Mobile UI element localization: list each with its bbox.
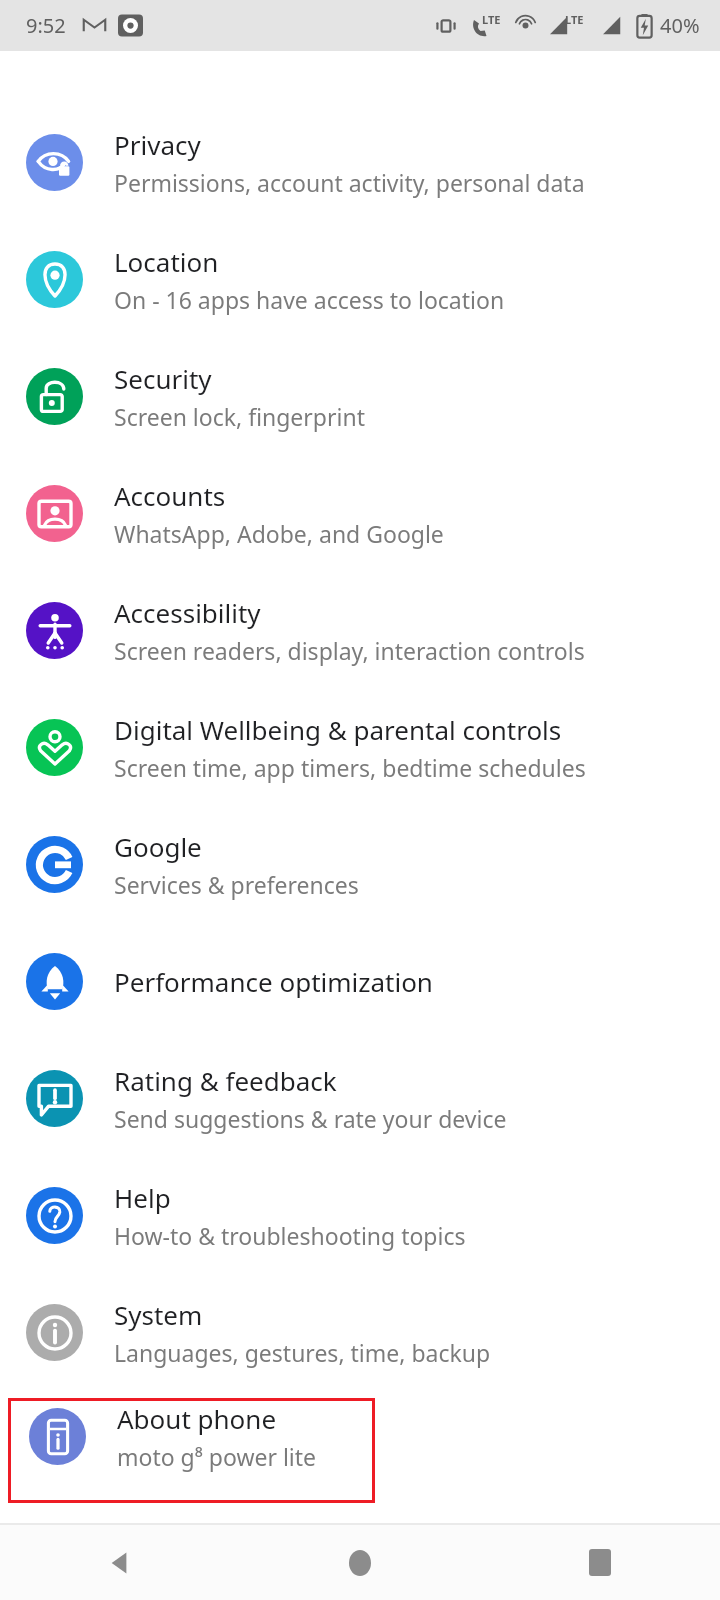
staticText: Google (114, 829, 202, 864)
staticText: moto g⁸ power lite (117, 1441, 317, 1472)
staticText: Security (114, 361, 212, 396)
staticText: LTE (482, 12, 501, 27)
staticText: Accounts (114, 478, 226, 513)
button[interactable]: Rating & feedback (0, 1040, 720, 1157)
staticText: On - 16 apps have access to location (114, 284, 505, 315)
button[interactable]: Security (0, 338, 720, 455)
button[interactable]: Location (0, 221, 720, 338)
button[interactable]: Google (0, 806, 720, 923)
staticText: 40% (660, 12, 700, 39)
button[interactable]: Back (82, 1525, 158, 1600)
staticText: Accessibility (114, 595, 261, 630)
button[interactable]: Privacy (0, 104, 720, 221)
staticText: Screen time, app timers, bedtime schedul… (114, 752, 586, 783)
button[interactable]: Performance optimization (0, 923, 720, 1040)
staticText: System (114, 1297, 203, 1332)
staticText: WhatsApp, Adobe, and Google (114, 518, 444, 549)
staticText: Screen readers, display, interaction con… (114, 635, 585, 666)
button[interactable]: System (0, 1274, 720, 1391)
staticText: Services & preferences (114, 869, 359, 900)
staticText: Permissions, account activity, personal … (114, 167, 585, 198)
button[interactable]: Help (0, 1157, 720, 1274)
button[interactable]: Accessibility (0, 572, 720, 689)
staticText: Help (114, 1180, 171, 1215)
button[interactable]: Recent apps (562, 1525, 638, 1600)
staticText: Privacy (114, 127, 201, 162)
staticText: Send suggestions & rate your device (114, 1103, 507, 1134)
staticText: 9:52 (26, 12, 66, 39)
staticText: Rating & feedback (114, 1063, 337, 1098)
staticText: Location (114, 244, 219, 279)
staticText: Languages, gestures, time, backup (114, 1337, 491, 1368)
button[interactable]: About phone (3, 1401, 364, 1472)
button[interactable]: Accounts (0, 455, 720, 572)
staticText: About phone (117, 1401, 277, 1436)
staticText: Digital Wellbeing & parental controls (114, 712, 562, 747)
staticText: How-to & troubleshooting topics (114, 1220, 466, 1251)
button[interactable]: Digital Wellbeing & parental controls (0, 689, 720, 806)
staticText: Screen lock, fingerprint (114, 401, 365, 432)
staticText: LTE (565, 12, 584, 27)
staticText: Performance optimization (114, 964, 433, 999)
button[interactable]: Home (322, 1525, 398, 1600)
